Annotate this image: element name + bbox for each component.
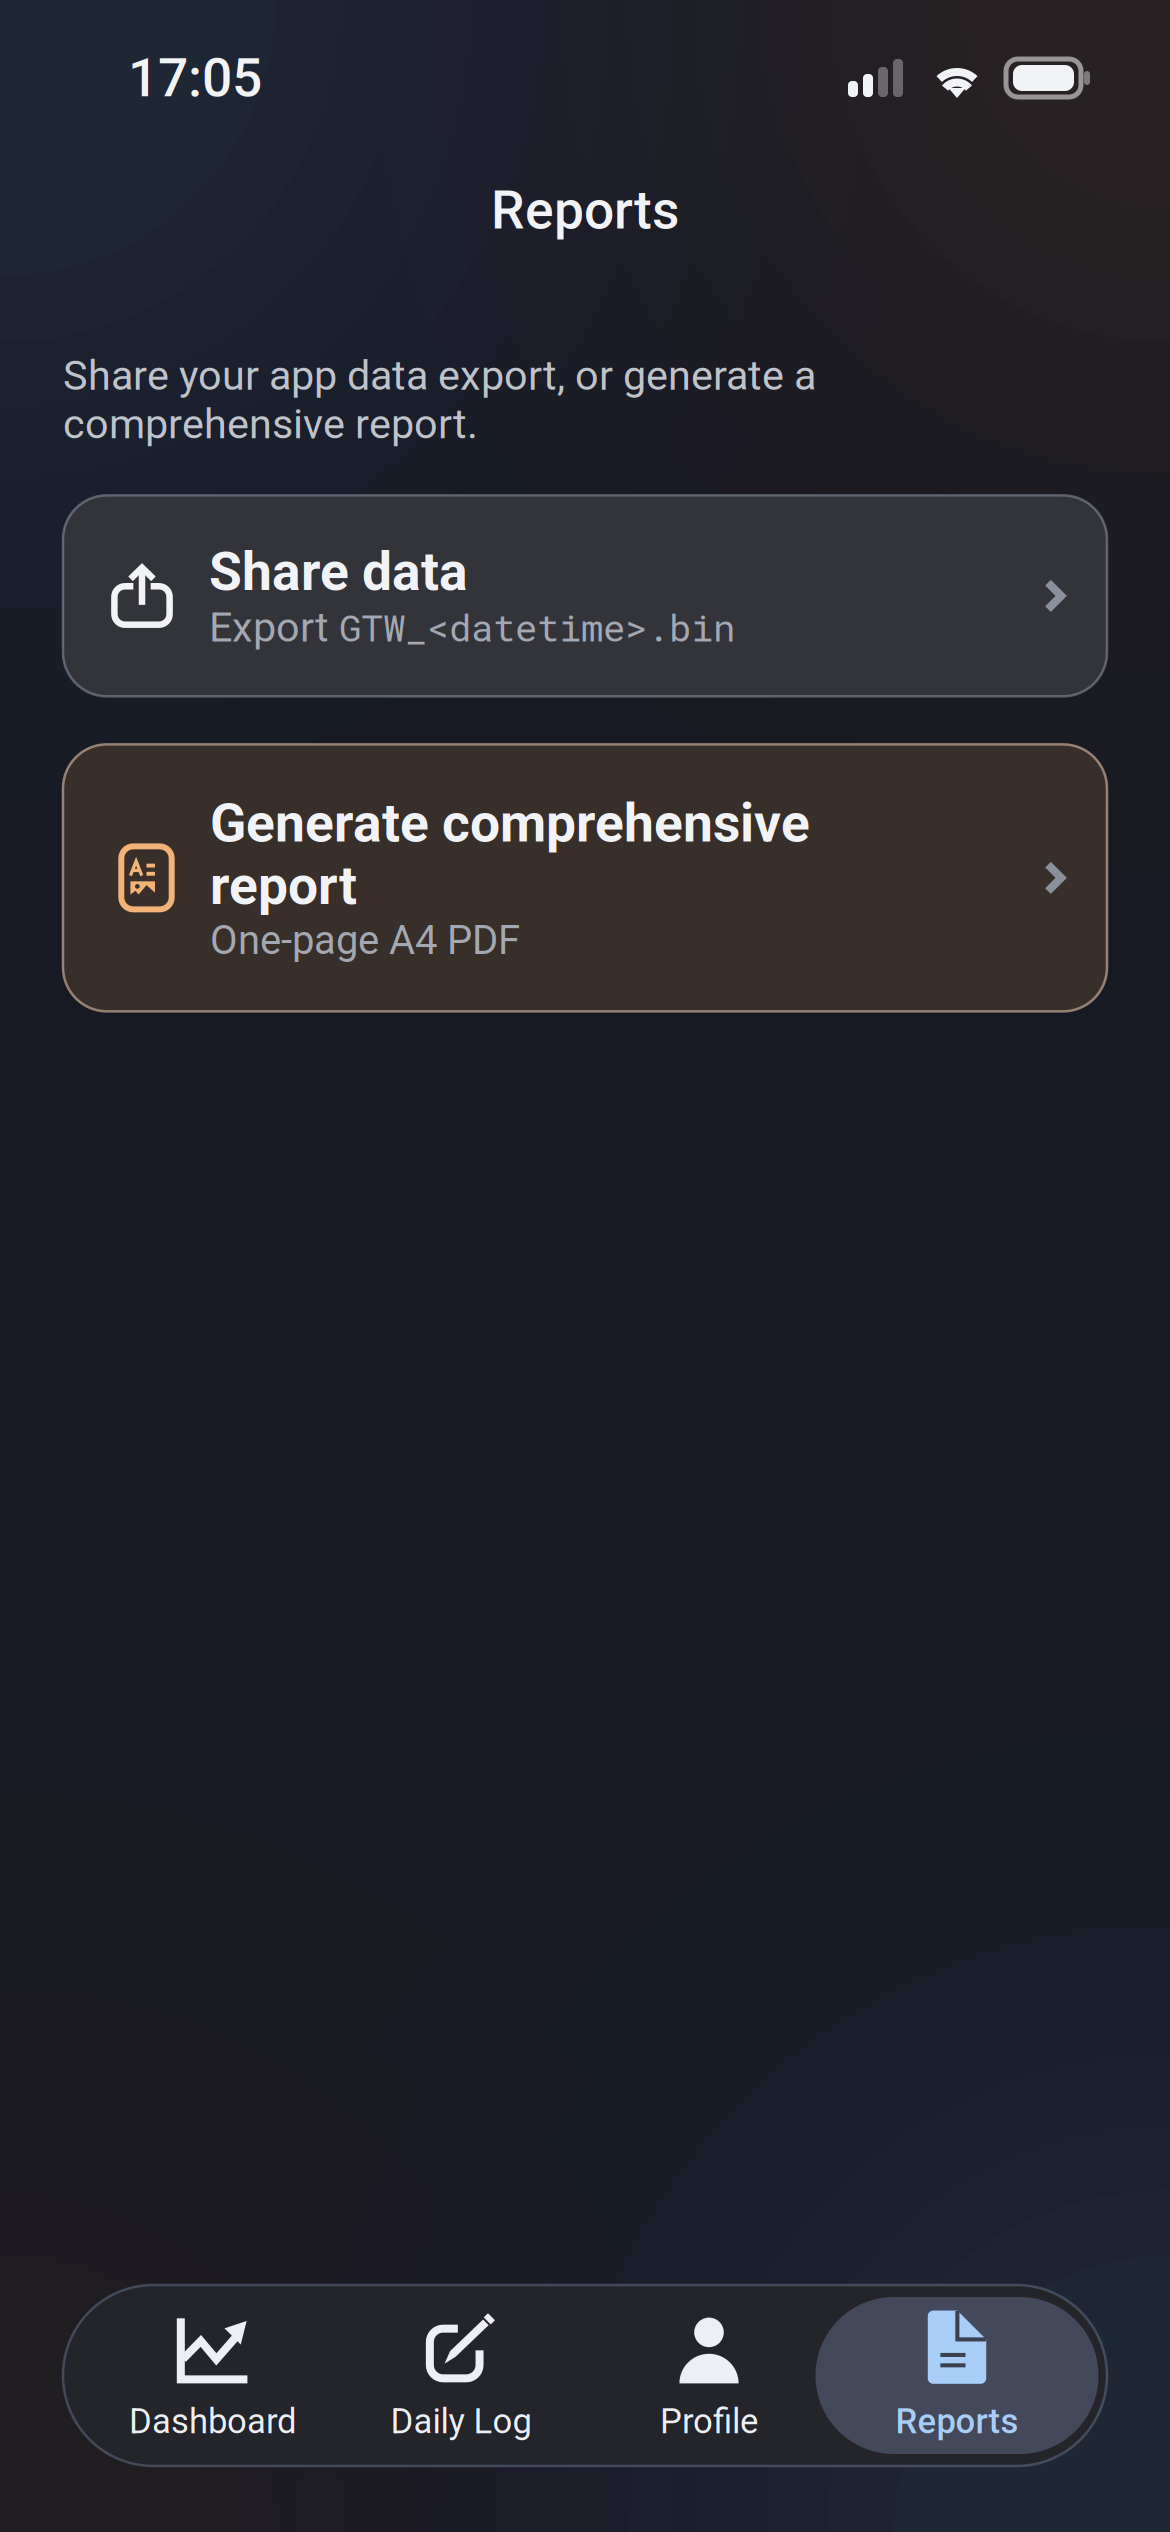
staticText: Share your app data export, or generate … — [63, 351, 816, 448]
staticText: One-page A4 PDF — [210, 917, 520, 964]
button[interactable]: Daily Log — [337, 2297, 585, 2454]
staticText: Profile — [660, 2401, 758, 2442]
staticText: Dashboard — [129, 2401, 297, 2442]
button[interactable]: Dashboard — [89, 2297, 337, 2454]
staticText: 17:05 — [128, 47, 262, 109]
button[interactable]: Generate comprehensive — [63, 744, 1107, 1011]
staticText: Daily Log — [390, 2401, 531, 2442]
staticText: Reports — [491, 179, 679, 241]
staticText: Generate comprehensive — [210, 792, 810, 854]
staticText: Reports — [895, 2401, 1018, 2442]
button[interactable]: Share data — [63, 495, 1107, 696]
button[interactable]: Profile — [585, 2297, 833, 2454]
staticText: Share data — [209, 541, 468, 603]
button[interactable]: Reports — [833, 2297, 1081, 2454]
staticText: Export GTW_<datetime>.bin — [209, 603, 735, 651]
staticText: report — [210, 854, 357, 917]
